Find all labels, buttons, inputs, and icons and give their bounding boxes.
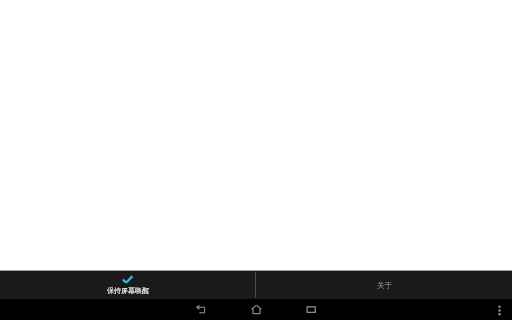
- button[interactable]: Back: [190, 299, 212, 320]
- button[interactable]: Recent apps: [300, 299, 322, 320]
- button[interactable]: Home: [245, 299, 267, 320]
- staticText: 保持屏幕唤醒: [107, 286, 149, 295]
- staticText: 关于: [377, 281, 392, 290]
- button[interactable]: More options: [490, 301, 508, 319]
- button[interactable]: 关于: [256, 271, 512, 299]
- button[interactable]: 保持屏幕唤醒: [0, 271, 255, 299]
